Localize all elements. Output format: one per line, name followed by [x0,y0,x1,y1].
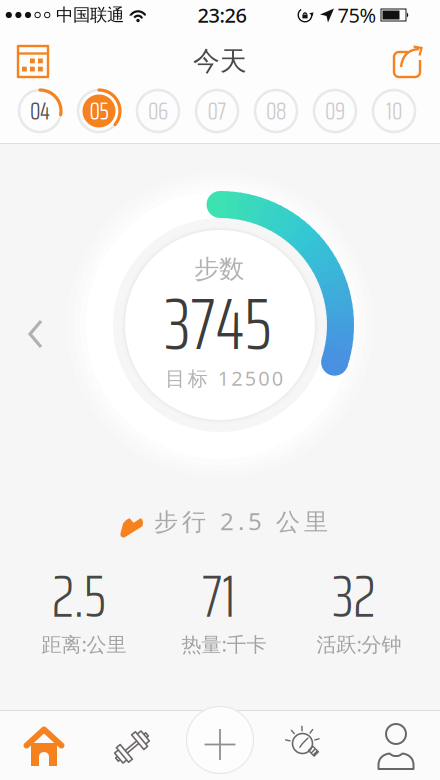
staticText: 步数 [194,253,244,284]
staticText: 75% [337,2,376,28]
staticText: 今天 [193,45,247,77]
button[interactable] [372,722,420,770]
button[interactable]: 08 [253,88,299,134]
staticText: 09 [325,92,345,130]
staticText: 32 [332,549,375,643]
staticText: 中国联通 [56,4,124,26]
button[interactable]: 07 [194,88,240,134]
button[interactable]: 06 [135,88,181,134]
button[interactable] [21,315,51,353]
staticText: 10 [386,92,402,130]
staticText: 08 [266,92,286,130]
staticText: 04 [30,92,50,130]
button[interactable] [184,704,256,776]
button[interactable]: 04 [17,88,63,134]
button[interactable]: 05 [76,88,122,134]
staticText: 71 [202,549,236,643]
staticText: 23:26 [197,2,246,28]
button[interactable]: 09 [312,88,358,134]
staticText: 07 [207,92,226,130]
staticText: 目标 12500 [165,365,283,391]
staticText: 3745 [164,266,271,381]
staticText: 步行 2.5 公里 [154,505,328,537]
button[interactable] [110,725,154,769]
button[interactable]: 10 [371,88,417,134]
staticText: 活跃:分钟 [316,631,401,657]
button[interactable] [22,725,66,769]
staticText: 05 [89,92,108,130]
button[interactable] [15,43,51,79]
staticText: 2.5 [52,549,106,643]
staticText: 热量:千卡 [181,631,266,657]
button[interactable] [388,43,424,79]
staticText: 06 [148,92,168,130]
staticText: 距离:公里 [41,631,126,657]
button[interactable] [283,722,331,770]
